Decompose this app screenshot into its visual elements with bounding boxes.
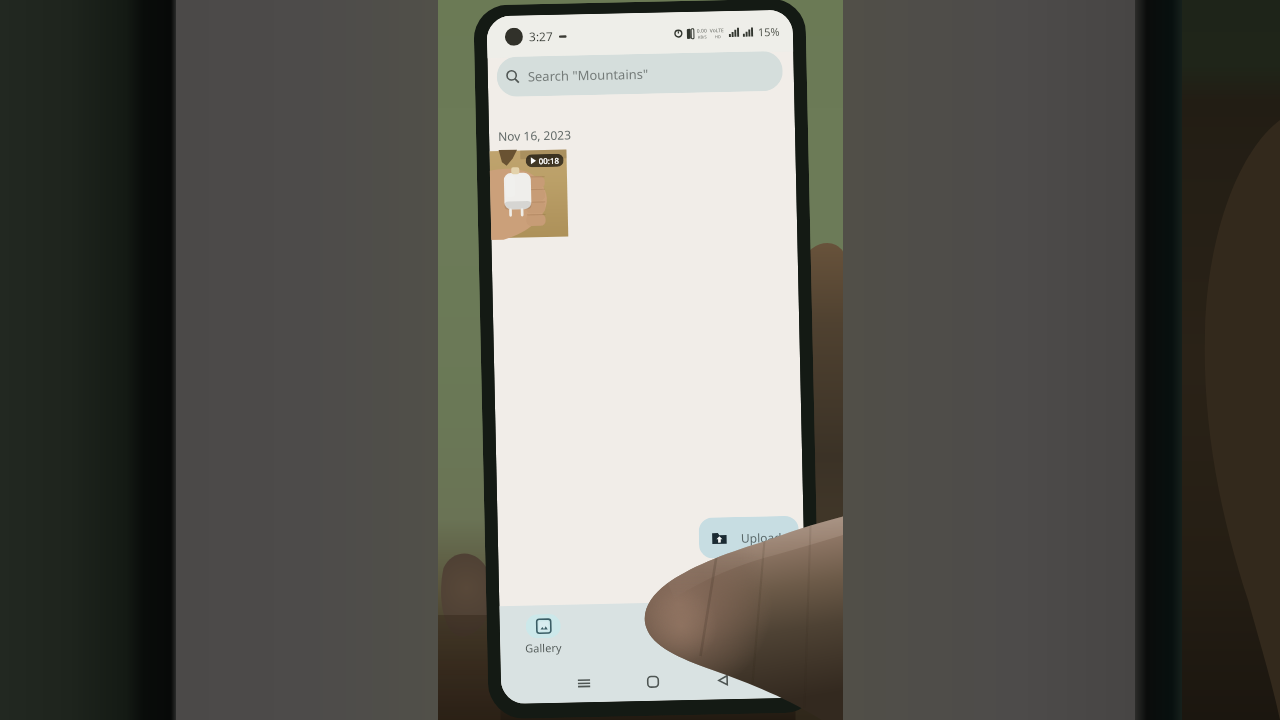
staticText: Search "Mountains" — [528, 65, 649, 85]
button[interactable]: Home — [645, 674, 661, 690]
staticText: 0.00 — [697, 27, 707, 35]
button[interactable]: 00:18 — [489, 150, 568, 238]
staticText: 15% — [758, 24, 780, 39]
button[interactable]: Upload — [698, 516, 799, 559]
staticText: Nov 16, 2023 — [498, 126, 571, 144]
button[interactable]: Back — [715, 672, 731, 688]
staticText: 00:18 — [538, 155, 560, 166]
staticText: HD — [715, 34, 721, 39]
staticText: 3:27 — [529, 28, 553, 44]
staticText: VoLTE — [710, 27, 725, 34]
staticText: Gallery — [525, 640, 562, 656]
staticText: KB/S — [698, 34, 707, 40]
staticText: Upload — [741, 529, 782, 546]
button[interactable]: Recents — [576, 675, 592, 691]
button[interactable]: Gallery — [502, 613, 583, 656]
button[interactable]: Search "Mountains" — [496, 51, 783, 97]
